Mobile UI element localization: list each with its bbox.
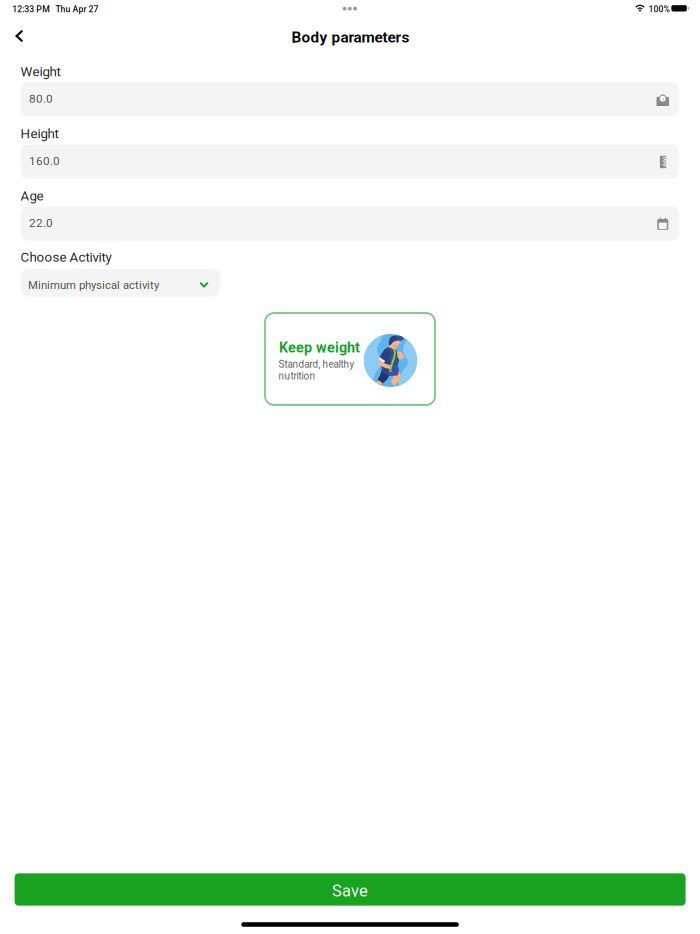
staticText: Minimum physical activity (28, 279, 159, 292)
staticText: Weight (21, 64, 61, 79)
button[interactable]: Back (1, 19, 37, 53)
staticText: 22.0 (29, 216, 53, 230)
staticText: Save (332, 881, 368, 901)
button[interactable]: 22.0 (20, 207, 679, 241)
staticText: 12:33 PM (12, 4, 50, 14)
button[interactable]: 80.0 (20, 82, 679, 116)
button[interactable]: Keep weight (265, 313, 435, 405)
staticText: 160.0 (29, 154, 60, 168)
staticText: Height (21, 126, 59, 142)
staticText: Age (21, 188, 44, 204)
staticText: Standard, healthy (278, 358, 354, 370)
staticText: Keep weight (279, 339, 360, 356)
staticText: Thu Apr 27 (56, 4, 99, 14)
staticText: nutrition (278, 370, 315, 382)
staticText: Choose Activity (21, 249, 112, 265)
button[interactable]: Minimum physical activity (20, 269, 220, 297)
staticText: 100% (648, 4, 669, 14)
button[interactable]: 160.0 (20, 144, 679, 178)
button[interactable]: Save (15, 873, 686, 906)
staticText: 80.0 (29, 92, 53, 106)
staticText: Body parameters (291, 28, 409, 46)
